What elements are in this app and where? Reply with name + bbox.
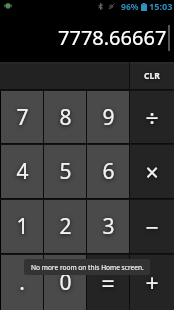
staticText: ÷ (145, 102, 159, 133)
button[interactable]: 5 (44, 145, 86, 198)
button[interactable]: 9 (87, 91, 129, 143)
staticText: 96% (121, 1, 139, 13)
staticText: 1 (16, 212, 29, 241)
staticText: 7 (16, 103, 29, 132)
staticText: × (145, 156, 159, 187)
staticText: 4 (16, 157, 29, 186)
button[interactable]: 0 (44, 255, 86, 310)
staticText: 2 (59, 212, 72, 241)
staticText: No more room on this Home screen. (31, 263, 144, 272)
button[interactable]: 4 (1, 145, 43, 198)
button[interactable]: = (87, 255, 129, 310)
staticText: + (145, 267, 159, 298)
button[interactable]: × (130, 145, 174, 198)
staticText: 8 (59, 103, 72, 132)
staticText: 5 (59, 157, 72, 186)
staticText: 0 (59, 268, 72, 297)
button[interactable]: + (130, 255, 174, 310)
button[interactable]: 8 (44, 91, 86, 143)
button[interactable]: . (1, 255, 43, 310)
button[interactable]: 2 (44, 200, 86, 253)
staticText: 15:03 (149, 0, 173, 13)
button[interactable]: CLR (130, 62, 174, 89)
staticText: − (145, 211, 159, 242)
staticText: 9 (102, 103, 115, 132)
other: Notification (4, 2, 12, 10)
button[interactable]: ÷ (130, 91, 174, 143)
staticText: CLR (144, 70, 160, 82)
staticText: 6 (102, 157, 115, 186)
button[interactable]: − (130, 200, 174, 253)
staticText: . (19, 268, 25, 297)
button[interactable]: 3 (87, 200, 129, 253)
button[interactable]: 7 (1, 91, 43, 143)
staticText: 3 (102, 212, 115, 241)
staticText: = (101, 267, 115, 298)
staticText: 7778.66667 (58, 24, 167, 51)
button[interactable]: 1 (1, 200, 43, 253)
button[interactable]: 6 (87, 145, 129, 198)
